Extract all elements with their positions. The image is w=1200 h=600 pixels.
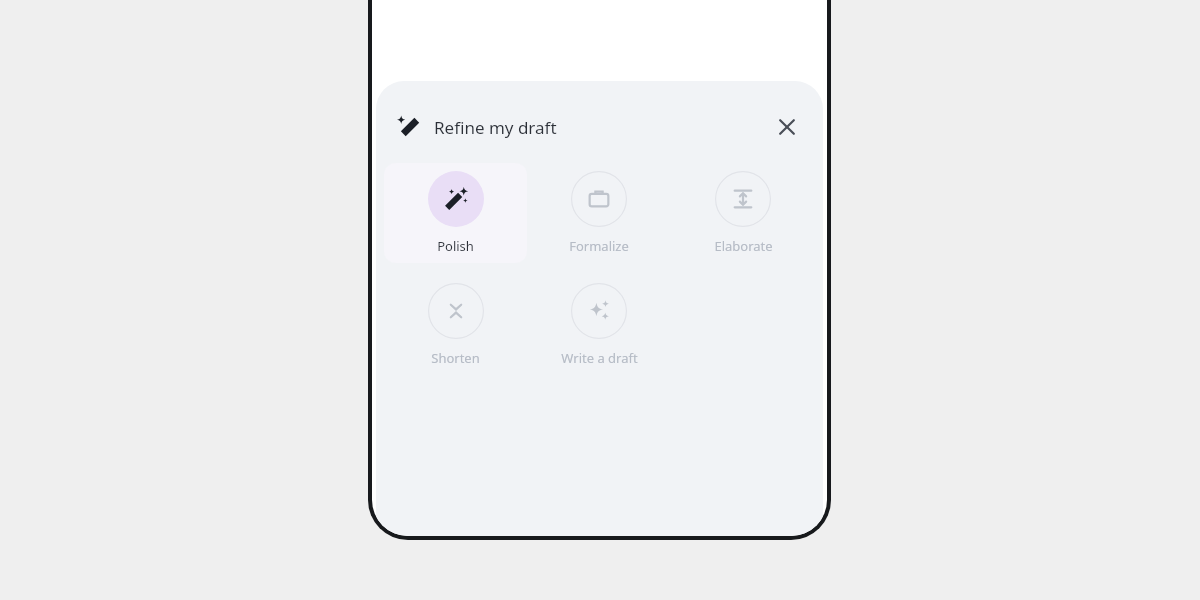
staticText: Elaborate bbox=[714, 237, 773, 255]
button[interactable]: Close bbox=[765, 105, 809, 149]
staticText: Write a draft bbox=[561, 349, 638, 367]
staticText: Polish bbox=[437, 237, 474, 255]
button[interactable]: Formalize bbox=[527, 163, 671, 263]
button[interactable]: Shorten bbox=[384, 275, 527, 375]
staticText: Refine my draft bbox=[434, 116, 557, 139]
staticText: Shorten bbox=[431, 349, 480, 367]
staticText: Formalize bbox=[569, 237, 629, 255]
button[interactable]: Elaborate bbox=[671, 163, 815, 263]
button[interactable]: Polish bbox=[384, 163, 527, 263]
button[interactable]: Write a draft bbox=[527, 275, 671, 375]
